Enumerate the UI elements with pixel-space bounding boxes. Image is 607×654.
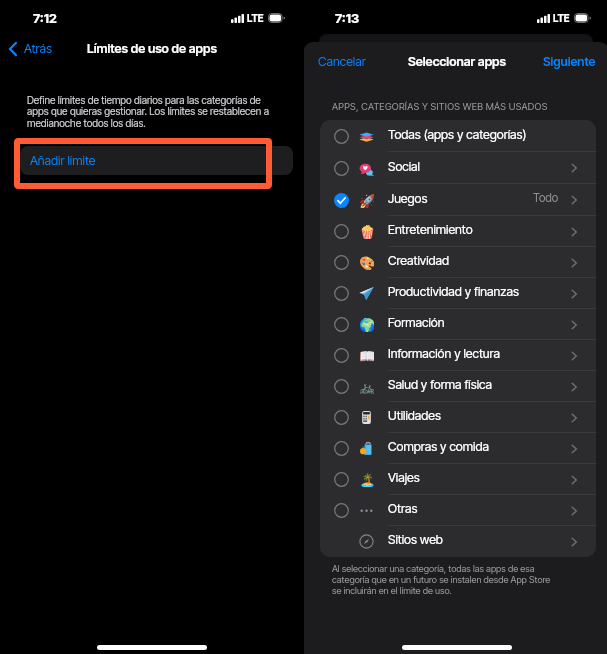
button[interactable]: Sitios web bbox=[320, 526, 596, 557]
staticText: Viajes bbox=[388, 470, 420, 485]
staticText: Salud y forma física bbox=[388, 377, 492, 392]
staticText: 🏝️ bbox=[359, 472, 374, 487]
button[interactable]: 🚲 bbox=[320, 371, 596, 402]
staticText: 7:12 bbox=[33, 10, 57, 26]
staticText: 🚲 bbox=[359, 379, 374, 394]
staticText: Juegos bbox=[388, 191, 428, 206]
button[interactable]: Productividad y finanzas bbox=[320, 278, 596, 309]
staticText: Entretenimiento bbox=[388, 222, 473, 237]
staticText: Sitios web bbox=[388, 532, 443, 547]
button[interactable]: 🌍 bbox=[320, 309, 596, 340]
staticText: Otras bbox=[388, 501, 418, 516]
staticText: Creatividad bbox=[388, 253, 450, 268]
staticText: LTE bbox=[553, 12, 570, 24]
staticText: Seleccionar apps bbox=[408, 54, 506, 69]
staticText: Al seleccionar una categoría, todas las … bbox=[332, 563, 560, 596]
staticText: Define límites de tiempo diarios para la… bbox=[27, 94, 275, 130]
button[interactable]: Todas (apps y categorías) bbox=[320, 120, 596, 152]
button[interactable]: 🎨 bbox=[320, 247, 596, 278]
staticText: Todas (apps y categorías) bbox=[388, 127, 527, 142]
staticText: 🎨 bbox=[359, 255, 374, 270]
staticText: 📖 bbox=[359, 348, 374, 363]
staticText: LTE bbox=[247, 12, 264, 24]
button[interactable]: Compras y comida bbox=[320, 433, 596, 464]
button[interactable]: Social bbox=[320, 152, 596, 184]
button[interactable]: Cancelar bbox=[318, 54, 366, 69]
button[interactable]: 📖 bbox=[320, 340, 596, 371]
staticText: Social bbox=[388, 159, 420, 174]
staticText: 7:13 bbox=[335, 10, 360, 26]
staticText: APPS, CATEGORÍAS Y SITIOS WEB MÁS USADOS bbox=[332, 101, 548, 112]
button[interactable]: Siguiente bbox=[543, 54, 596, 69]
staticText: Utilidades bbox=[388, 408, 441, 423]
staticText: Información y lectura bbox=[388, 346, 501, 361]
staticText: Límites de uso de apps bbox=[87, 41, 217, 56]
staticText: 🍿 bbox=[359, 224, 374, 239]
button[interactable]: Añadir límite bbox=[20, 146, 293, 175]
staticText: Añadir límite bbox=[30, 153, 96, 168]
staticText: Todo bbox=[533, 191, 559, 205]
button[interactable]: Utilidades bbox=[320, 402, 596, 433]
staticText: Formación bbox=[388, 315, 445, 330]
button[interactable]: Otras bbox=[320, 495, 596, 526]
button[interactable]: 🍿 bbox=[320, 216, 596, 247]
button[interactable]: 🚀 bbox=[320, 184, 596, 216]
staticText: 🚀 bbox=[359, 193, 374, 208]
staticText: Productividad y finanzas bbox=[388, 284, 519, 299]
staticText: Compras y comida bbox=[388, 439, 489, 454]
button[interactable]: 🏝️ bbox=[320, 464, 596, 495]
staticText: 🌍 bbox=[359, 317, 374, 332]
button[interactable]: Atrás bbox=[9, 41, 52, 56]
staticText: Atrás bbox=[24, 41, 52, 56]
